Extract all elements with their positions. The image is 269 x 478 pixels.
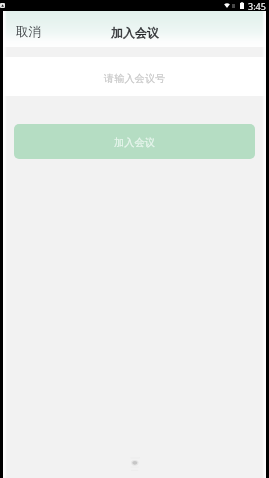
button[interactable]: 加入会议: [14, 124, 255, 159]
other: Notification: [0, 3, 5, 8]
staticText: 3:45: [248, 0, 266, 11]
button[interactable]: 请输入会议号: [3, 57, 266, 96]
staticText: 加入会议: [114, 136, 155, 149]
staticText: 取消: [16, 24, 41, 40]
button[interactable]: 取消: [3, 18, 54, 46]
other: Wi-Fi: [224, 3, 230, 8]
staticText: 加入会议: [111, 25, 159, 40]
staticText: 请输入会议号: [104, 72, 166, 85]
other: Battery: [240, 2, 244, 9]
staticText: 加入会议: [111, 25, 159, 40]
